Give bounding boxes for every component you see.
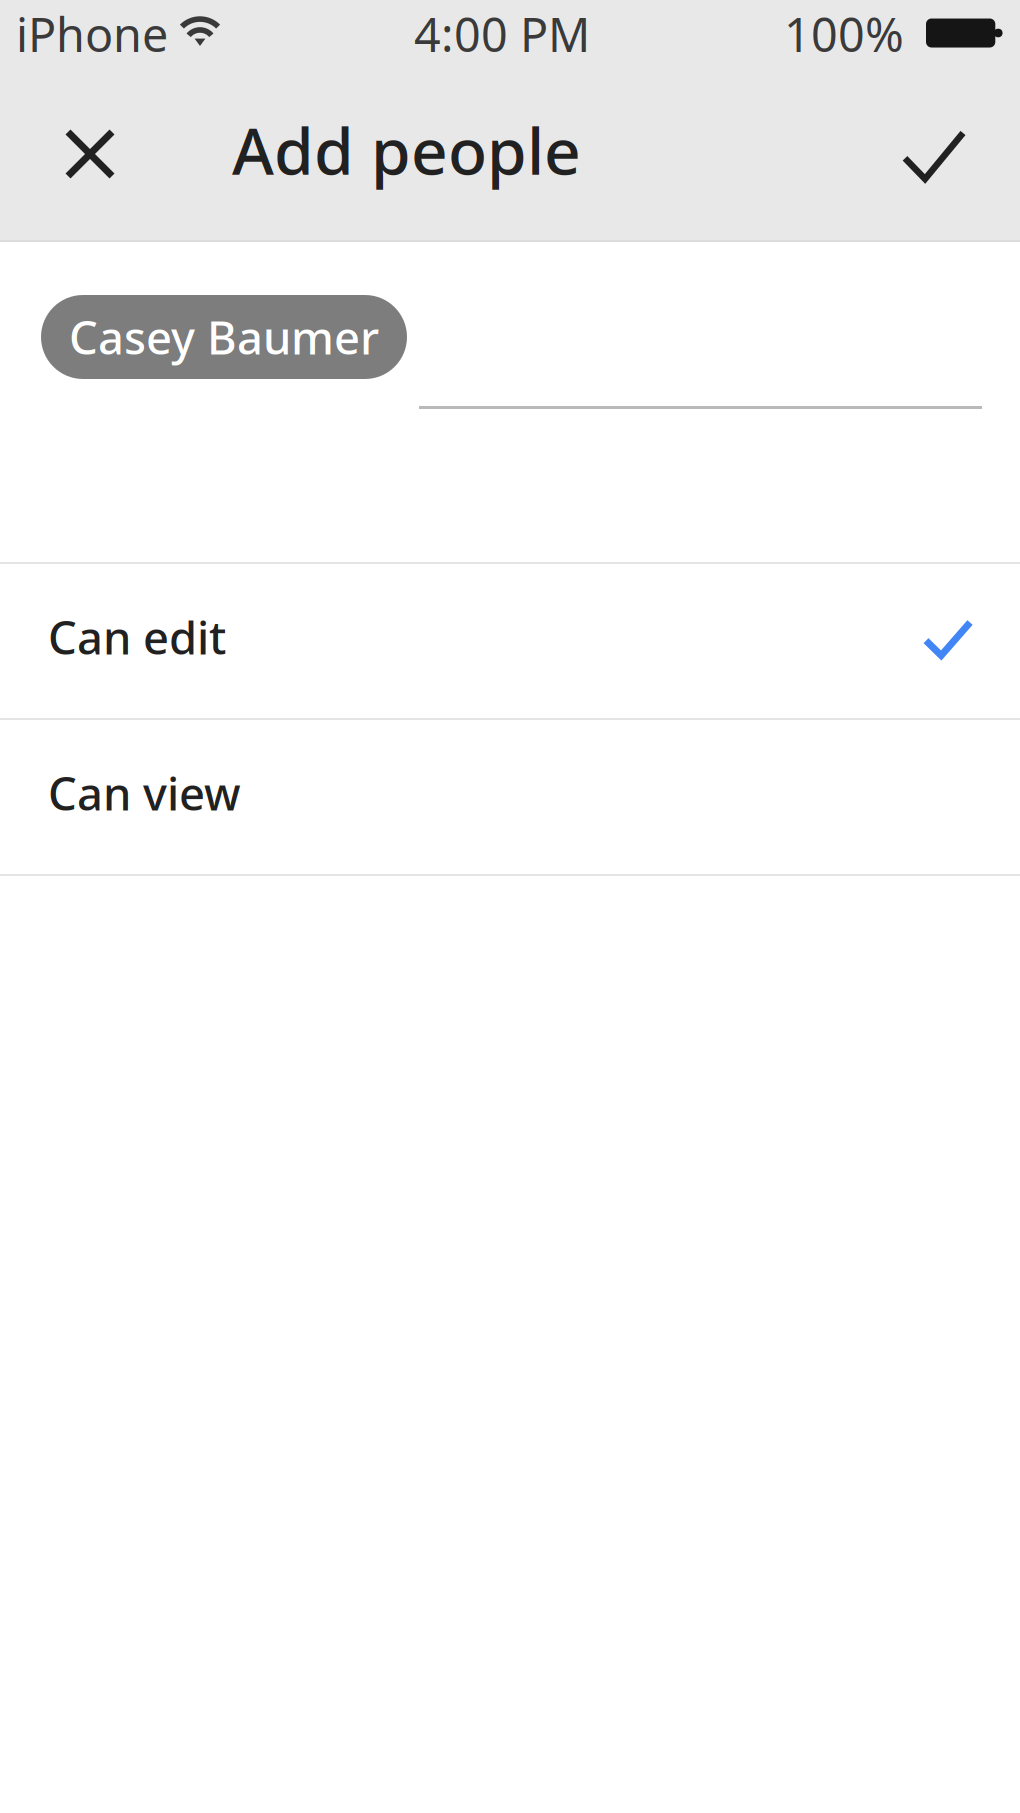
staticText: Add people <box>232 107 581 192</box>
button[interactable]: Can edit <box>0 564 1020 718</box>
staticText: 4:00 PM <box>414 3 590 65</box>
staticText: iPhone <box>16 3 168 65</box>
button[interactable]: Casey Baumer <box>41 295 407 379</box>
button[interactable]: Can view <box>0 720 1020 874</box>
button[interactable]: Done <box>874 82 994 240</box>
staticText: Can view <box>48 763 241 823</box>
staticText: Can edit <box>48 607 226 667</box>
staticText: Casey Baumer <box>69 307 379 367</box>
button[interactable]: Close <box>12 82 168 240</box>
button[interactable]: Add people <box>222 82 591 240</box>
button[interactable]: Add another person <box>419 295 982 429</box>
staticText: 100% <box>784 3 904 65</box>
